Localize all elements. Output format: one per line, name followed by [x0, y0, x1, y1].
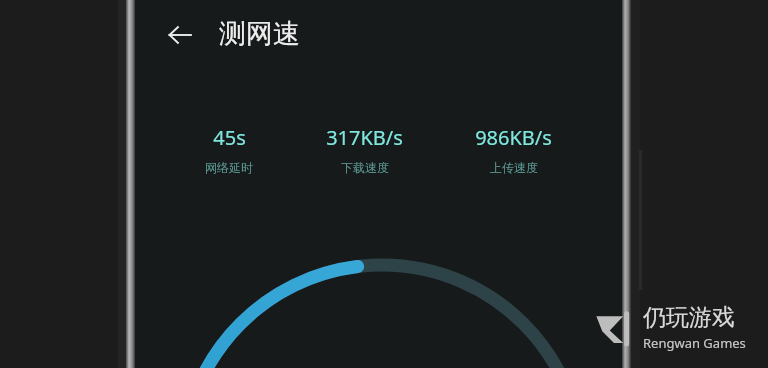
staticText: 测网速	[219, 17, 300, 51]
button[interactable]: Back	[157, 12, 203, 58]
staticText: 45s	[213, 124, 246, 151]
staticText: 986KB/s	[475, 124, 552, 151]
staticText: 网络延时	[205, 160, 253, 175]
staticText: 下载速度	[341, 160, 389, 175]
staticText: 上传速度	[490, 160, 538, 175]
staticText: Rengwan Games	[643, 334, 746, 352]
staticText: 317KB/s	[326, 124, 403, 151]
staticText: 仍玩游戏	[643, 303, 735, 332]
